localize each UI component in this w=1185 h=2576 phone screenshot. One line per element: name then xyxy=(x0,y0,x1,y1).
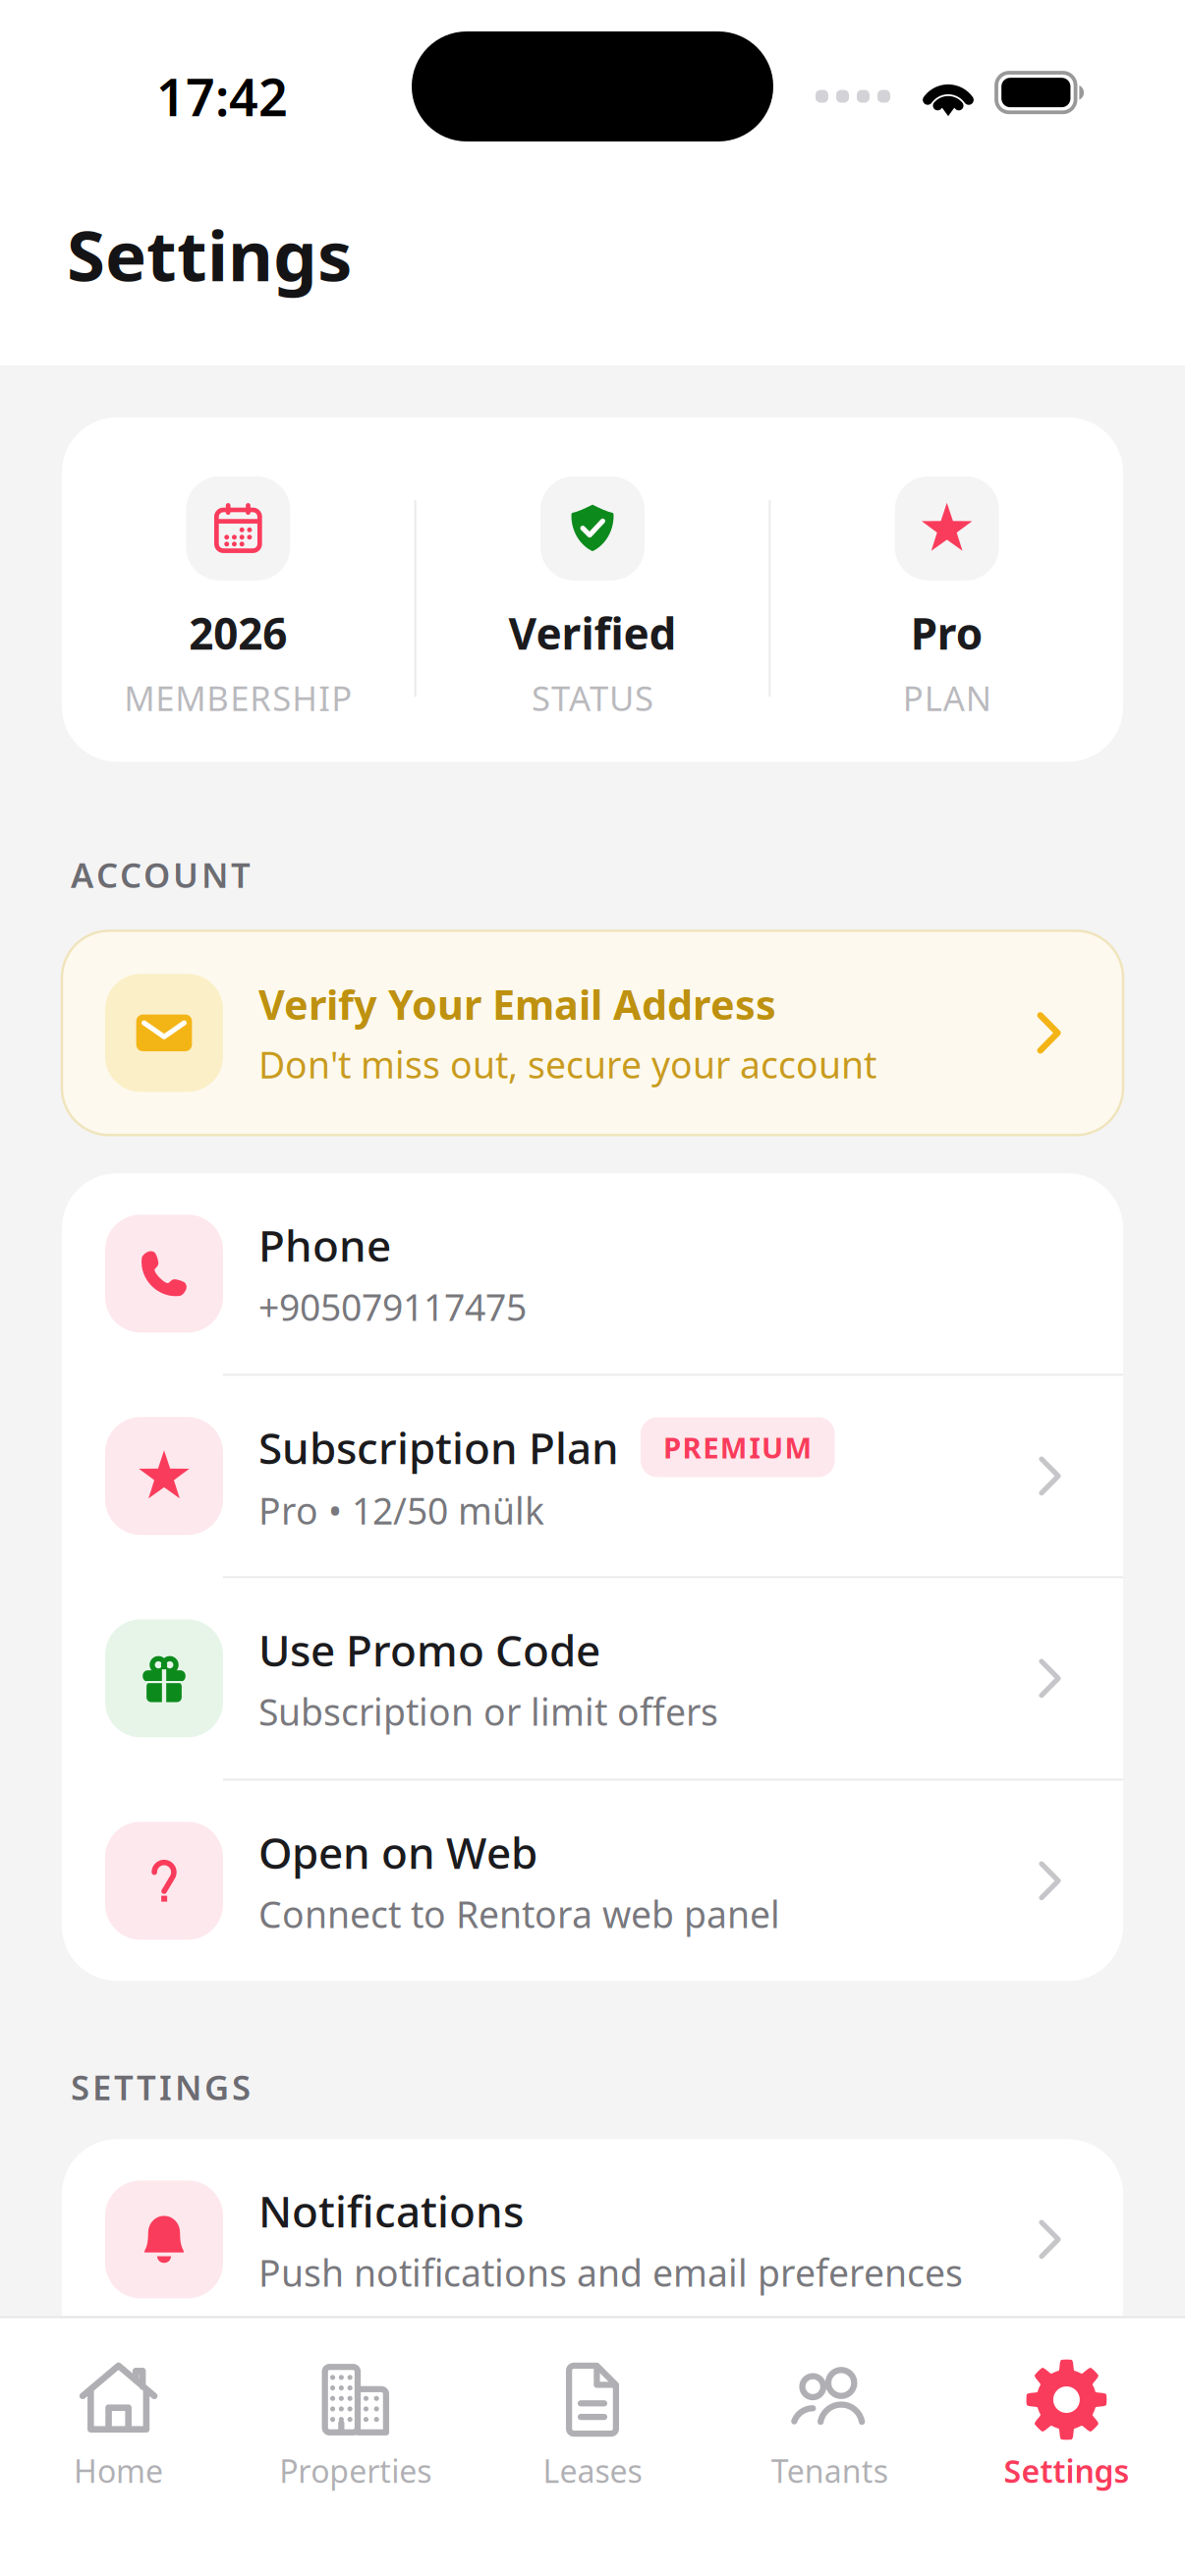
staticText: 2026 xyxy=(189,604,287,661)
staticText: SETTINGS xyxy=(71,2064,251,2110)
staticText: Manage your data xyxy=(258,2451,574,2499)
staticText: Tenants xyxy=(771,2450,888,2492)
staticText: STATUS xyxy=(532,675,653,720)
staticText: PREMIUM xyxy=(663,1428,812,1466)
button[interactable]: Properties xyxy=(237,2318,474,2492)
staticText: ACCOUNT xyxy=(71,852,251,897)
button[interactable]: Privacy & Security xyxy=(62,2342,1123,2542)
staticText: Phone xyxy=(258,1216,391,1273)
staticText: Home xyxy=(74,2450,163,2492)
staticText: Settings xyxy=(67,208,352,300)
staticText: PLAN xyxy=(903,675,991,720)
button[interactable]: Tenants xyxy=(711,2318,948,2492)
staticText: +905079117475 xyxy=(258,1282,527,1331)
staticText: Connect to Rentora web panel xyxy=(258,1890,780,1938)
staticText: Pro xyxy=(911,604,983,661)
button[interactable]: Leases xyxy=(474,2318,711,2492)
button[interactable]: Home xyxy=(0,2318,237,2492)
staticText: Settings xyxy=(1004,2450,1129,2492)
staticText: Pro • 12/50 mülk xyxy=(258,1486,544,1535)
staticText: Open on Web xyxy=(258,1823,537,1881)
button[interactable]: Use Promo Code xyxy=(62,1578,1123,1779)
staticText: Properties xyxy=(279,2450,432,2492)
staticText: Use Promo Code xyxy=(258,1621,600,1678)
staticText: Verified xyxy=(508,604,677,661)
staticText: Subscription or limit offers xyxy=(258,1687,718,1736)
button[interactable]: Phone xyxy=(62,1173,1123,1374)
staticText: Push notifications and email preferences xyxy=(258,2248,963,2297)
staticText: Leases xyxy=(543,2450,642,2492)
button[interactable]: Open on Web xyxy=(62,1781,1123,1981)
button[interactable]: Settings xyxy=(948,2318,1185,2492)
button[interactable]: Notifications xyxy=(62,2139,1123,2340)
staticText: Verify Your Email Address xyxy=(258,977,776,1031)
button[interactable]: Subscription Plan xyxy=(62,1376,1123,1576)
staticText: 17:42 xyxy=(156,62,288,130)
staticText: Don't miss out, secure your account xyxy=(258,1040,876,1089)
staticText: MEMBERSHIP xyxy=(124,675,352,720)
staticText: Notifications xyxy=(258,2182,524,2239)
button[interactable]: Verify Your Email Address xyxy=(0,931,1185,1135)
staticText: Privacy & Security xyxy=(258,2384,627,2442)
staticText: Subscription Plan xyxy=(258,1418,619,1476)
